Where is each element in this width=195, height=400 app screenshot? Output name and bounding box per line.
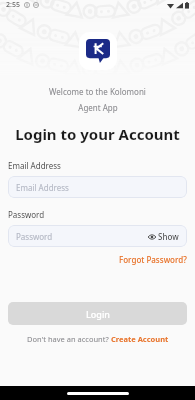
staticText: Password: [8, 209, 45, 220]
staticText: Email Address: [8, 160, 61, 171]
staticText: Login: [86, 308, 110, 320]
staticText: Show: [158, 231, 179, 242]
button[interactable]: Login: [8, 302, 187, 325]
staticText: Forgot Password?: [119, 254, 187, 265]
button[interactable]: Email Address: [8, 176, 187, 198]
staticText: Login to your Account: [15, 124, 180, 144]
staticText: Welcome to the Kolomoni: [49, 86, 146, 97]
button[interactable]: Show: [148, 231, 179, 242]
button[interactable]: Create Account: [111, 334, 169, 344]
button[interactable]: Forgot Password?: [119, 254, 187, 265]
staticText: 2:55: [6, 0, 20, 10]
staticText: Agent App: [78, 102, 118, 113]
staticText: Don't have an account?: [27, 334, 111, 344]
staticText: Create Account: [111, 334, 169, 344]
staticText: Password: [16, 231, 53, 242]
button[interactable]: Password: [8, 225, 187, 247]
staticText: Email Address: [16, 182, 69, 193]
